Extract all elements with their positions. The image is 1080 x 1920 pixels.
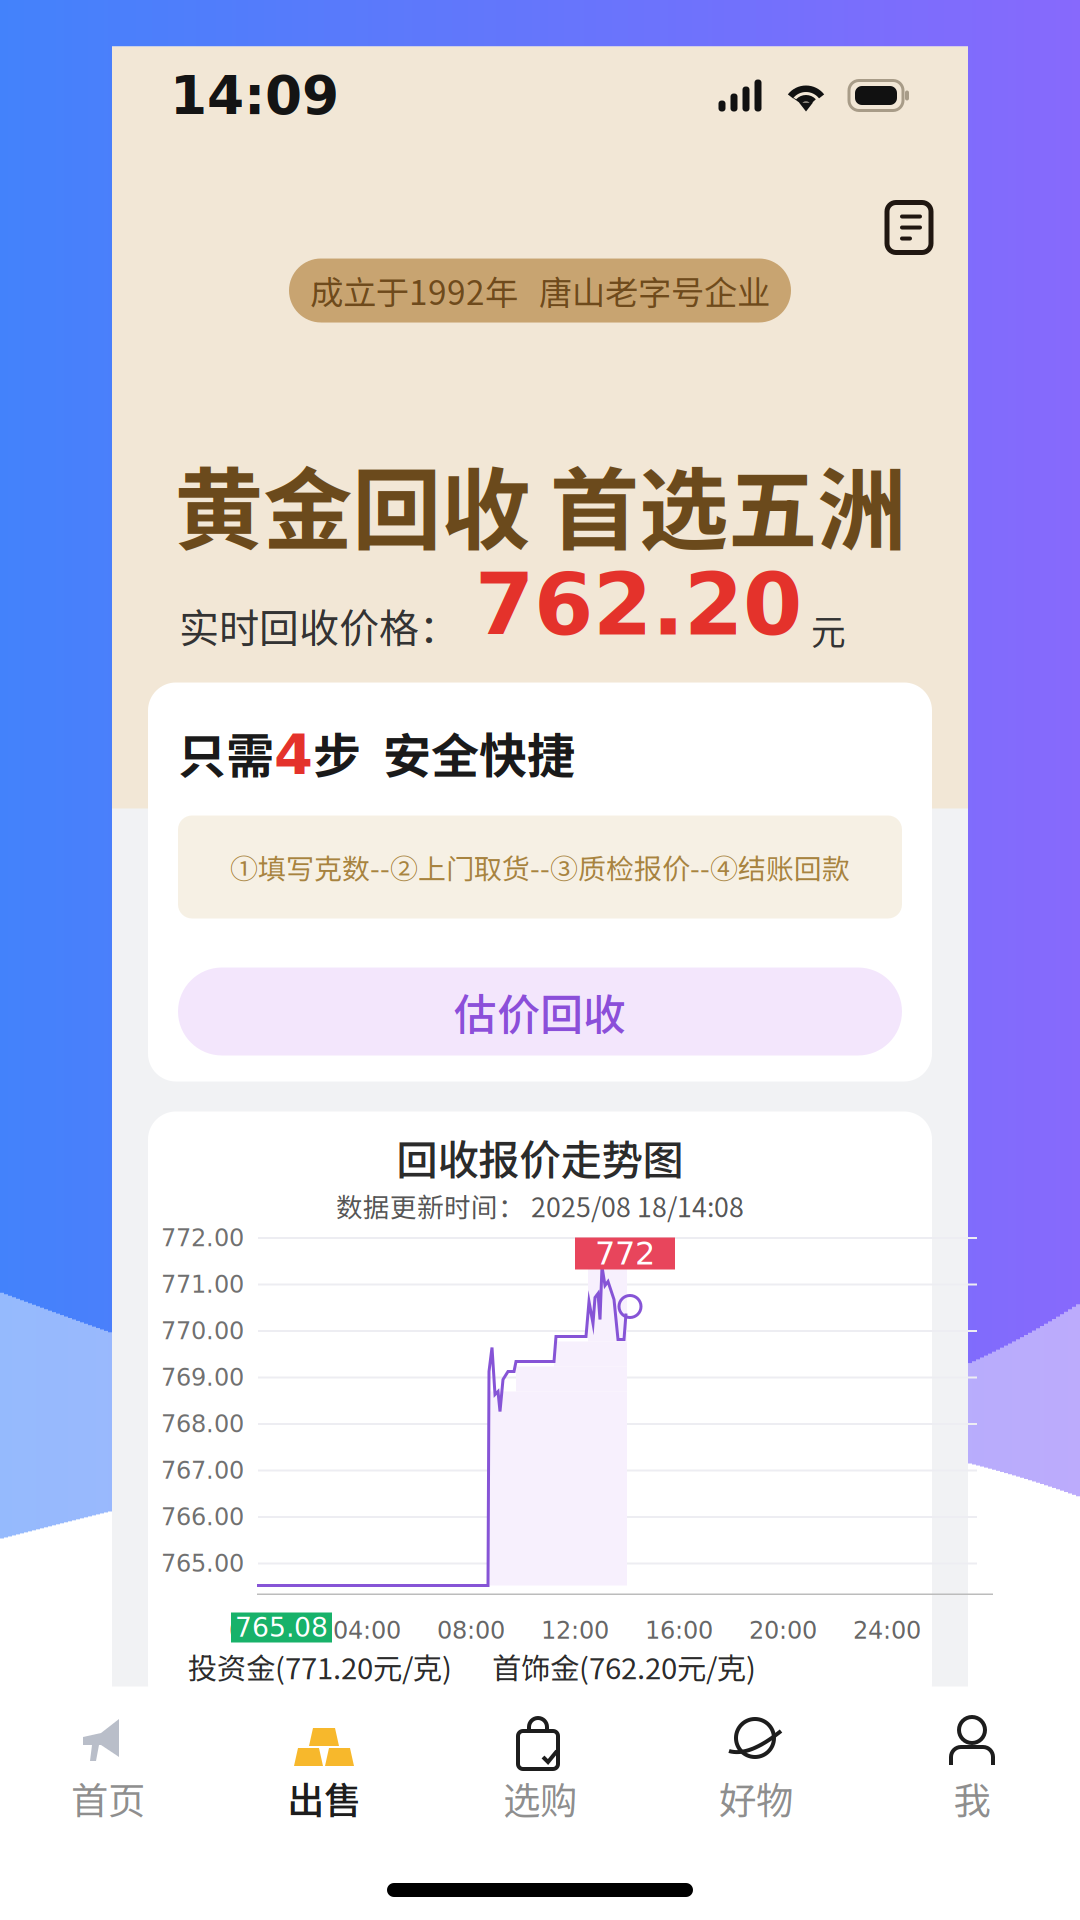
staticText: 12:00 — [541, 1616, 609, 1644]
staticText: 765.08 — [235, 1612, 328, 1643]
button[interactable]: 出售 — [216, 1703, 432, 1833]
button[interactable]: 我 — [864, 1703, 1080, 1833]
staticText: 766.00 — [161, 1503, 244, 1531]
staticText: 实时回收价格： — [179, 597, 459, 654]
staticText: 出售 — [287, 1771, 361, 1825]
staticText: 步 安全快捷 — [313, 718, 575, 787]
staticText: 08:00 — [437, 1616, 505, 1644]
button[interactable]: 订单记录 — [882, 198, 936, 256]
staticText: 成立于1992年 唐山老字号企业 — [310, 266, 770, 315]
staticText: 768.00 — [161, 1410, 244, 1438]
staticText: 770.00 — [161, 1317, 244, 1345]
staticText: ①填写克数--②上门取货--③质检报价--④结账回款 — [230, 847, 850, 887]
staticText: 我 — [953, 1771, 990, 1825]
staticText: 772.00 — [161, 1224, 244, 1252]
staticText: 回收报价走势图 — [396, 1128, 683, 1187]
button[interactable]: 好物 — [648, 1703, 864, 1833]
staticText: 好物 — [719, 1771, 793, 1825]
staticText: 黄金回收 首选五洲 — [174, 439, 906, 568]
staticText: 771.00 — [161, 1270, 244, 1298]
staticText: 选购 — [503, 1771, 577, 1825]
button[interactable]: 估价回收 — [178, 967, 902, 1055]
staticText: 765.00 — [161, 1549, 244, 1577]
staticText: 14:09 — [170, 64, 339, 127]
staticText: 762.20 — [475, 555, 802, 654]
button[interactable]: 首页 — [0, 1703, 216, 1833]
staticText: 24:00 — [853, 1616, 921, 1644]
staticText: 数据更新时间： 2025/08 18/14:08 — [336, 1186, 744, 1225]
button[interactable]: 选购 — [432, 1703, 648, 1833]
staticText: 元 — [811, 604, 846, 654]
staticText: 767.00 — [161, 1456, 244, 1484]
staticText: 16:00 — [645, 1616, 713, 1644]
staticText: 00:00 — [229, 1616, 297, 1644]
staticText: 估价回收 — [454, 981, 626, 1042]
staticText: 772 — [595, 1235, 655, 1272]
staticText: 769.00 — [161, 1363, 244, 1391]
staticText: 首页 — [71, 1771, 145, 1825]
staticText: 只需 — [178, 718, 274, 787]
staticText: 4 — [274, 721, 313, 787]
staticText: 投资金(771.20元/克) — [188, 1645, 452, 1688]
staticText: 04:00 — [333, 1616, 401, 1644]
staticText: 20:00 — [749, 1616, 817, 1644]
staticText: 首饰金(762.20元/克) — [492, 1645, 756, 1688]
